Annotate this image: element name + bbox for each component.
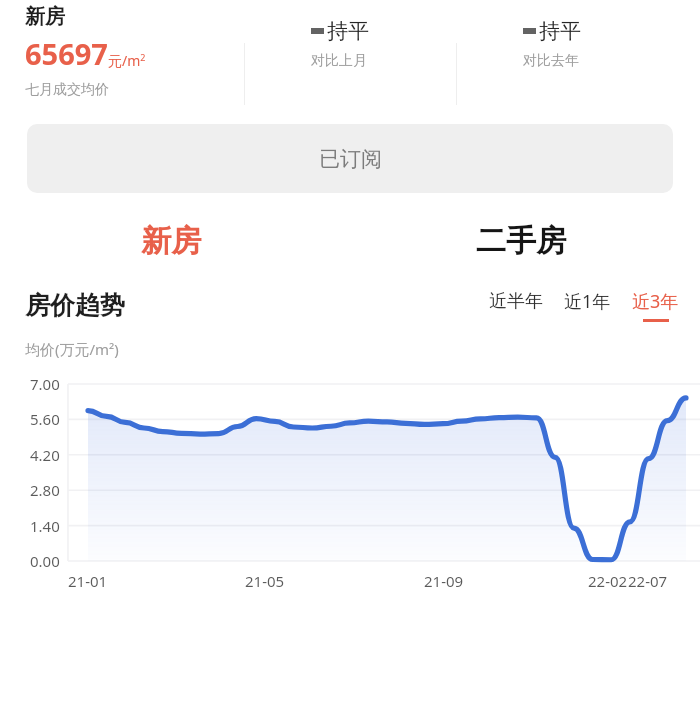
button[interactable]: 二手房	[342, 193, 700, 289]
staticText: 2.80	[30, 480, 60, 500]
staticText: 22-07	[628, 571, 668, 591]
staticText: 7.00	[30, 374, 60, 394]
staticText: 已订阅	[319, 146, 382, 172]
staticText: 21-09	[424, 571, 464, 591]
button[interactable]: 近1年	[564, 289, 611, 322]
staticText: 持平	[327, 18, 369, 44]
staticText: 近3年	[632, 289, 679, 314]
staticText: 七月成交均价	[25, 81, 109, 99]
staticText: 元/m2	[108, 51, 146, 70]
button[interactable]: 持平	[245, 0, 456, 70]
staticText: 65697	[25, 34, 108, 73]
staticText: 5.60	[30, 409, 60, 429]
staticText: 对比去年	[523, 52, 579, 70]
staticText: 21-05	[245, 571, 285, 591]
staticText: 均价(万元/m²)	[25, 339, 119, 359]
button[interactable]: 已订阅	[27, 124, 673, 193]
staticText: 0.00	[30, 551, 60, 571]
staticText: 房价趋势	[25, 290, 125, 321]
staticText: 新房	[25, 4, 65, 29]
staticText: 4.20	[30, 445, 60, 465]
staticText: 持平	[539, 18, 581, 44]
button[interactable]: 新房	[0, 193, 342, 289]
staticText: 二手房	[476, 222, 566, 260]
staticText: 1.40	[30, 516, 60, 536]
staticText: 22-02	[588, 571, 628, 591]
staticText: 近半年	[489, 290, 543, 313]
staticText: 近1年	[564, 289, 611, 314]
staticText: 对比上月	[311, 52, 367, 70]
staticText: 21-01	[68, 571, 108, 591]
button[interactable]: 近半年	[489, 290, 543, 321]
button[interactable]: 持平	[457, 0, 700, 70]
staticText: 新房	[141, 222, 201, 260]
button[interactable]: 近3年	[632, 289, 679, 322]
